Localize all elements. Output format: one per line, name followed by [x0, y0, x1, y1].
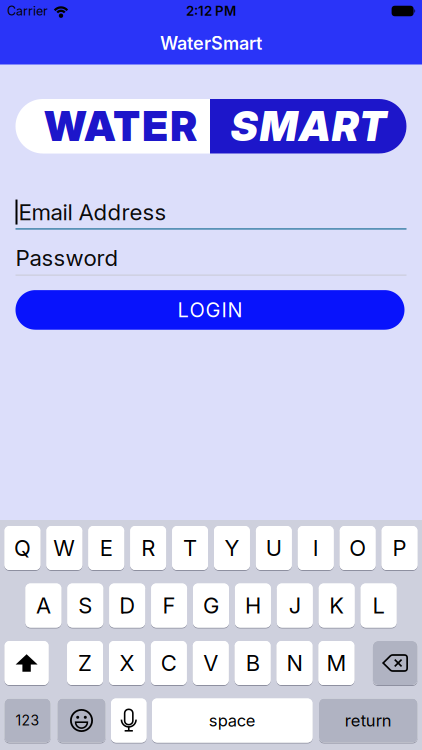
staticText: WATER: [44, 102, 197, 151]
button[interactable]: I: [298, 525, 334, 570]
staticText: S: [78, 592, 92, 619]
button[interactable]: J: [277, 583, 313, 628]
button[interactable]: D: [109, 583, 145, 628]
staticText: Q: [14, 535, 31, 561]
button[interactable]: T: [172, 525, 208, 570]
button[interactable]: 123: [4, 698, 50, 743]
staticText: return: [345, 710, 392, 730]
staticText: I: [313, 535, 319, 561]
button[interactable]: S: [67, 583, 103, 628]
button[interactable]: H: [235, 583, 271, 628]
staticText: Y: [224, 535, 239, 561]
staticText: O: [349, 535, 366, 561]
staticText: G: [203, 592, 219, 619]
button[interactable]: Email Address: [15, 198, 406, 230]
button[interactable]: E: [88, 525, 124, 570]
staticText: D: [119, 592, 135, 619]
staticText: F: [163, 592, 176, 619]
staticText: T: [183, 535, 197, 561]
button[interactable]: Z: [67, 640, 103, 685]
button[interactable]: O: [340, 525, 376, 570]
button[interactable]: L: [361, 583, 396, 628]
staticText: LOGIN: [177, 298, 242, 322]
button[interactable]: return: [319, 698, 417, 743]
button[interactable]: V: [193, 640, 229, 685]
button[interactable]: [111, 698, 146, 743]
button[interactable]: U: [256, 525, 292, 570]
staticText: Carrier: [7, 3, 48, 19]
staticText: K: [329, 592, 344, 619]
button[interactable]: M: [318, 640, 354, 685]
button[interactable]: N: [277, 640, 312, 685]
button[interactable]: Q: [4, 525, 40, 570]
staticText: B: [246, 650, 260, 676]
button[interactable]: [57, 698, 105, 743]
button[interactable]: space: [152, 698, 312, 743]
button[interactable]: W: [46, 525, 82, 570]
staticText: E: [100, 535, 113, 561]
staticText: N: [286, 650, 302, 676]
staticText: M: [326, 650, 346, 676]
button[interactable]: F: [151, 583, 187, 628]
button[interactable]: R: [130, 525, 166, 570]
staticText: Password: [15, 244, 118, 271]
staticText: P: [393, 535, 407, 561]
staticText: H: [245, 592, 261, 619]
staticText: space: [209, 710, 256, 730]
button[interactable]: G: [193, 583, 229, 628]
staticText: Z: [78, 650, 92, 676]
button[interactable]: [5, 640, 49, 685]
staticText: A: [36, 592, 51, 619]
staticText: Email Address: [18, 198, 166, 226]
staticText: R: [141, 535, 155, 561]
staticText: U: [266, 535, 282, 561]
button[interactable]: Y: [214, 525, 250, 570]
button[interactable]: P: [382, 525, 417, 570]
staticText: WaterSmart: [160, 32, 262, 54]
staticText: V: [203, 650, 218, 676]
button[interactable]: K: [319, 583, 355, 628]
staticText: J: [289, 592, 301, 619]
staticText: W: [53, 535, 75, 561]
button[interactable]: A: [25, 583, 61, 628]
staticText: X: [119, 650, 134, 676]
staticText: C: [161, 650, 177, 676]
button[interactable]: LOGIN: [15, 290, 404, 330]
button[interactable]: X: [109, 640, 145, 685]
button[interactable]: Password: [15, 244, 406, 276]
button[interactable]: C: [151, 640, 187, 685]
staticText: 123: [15, 712, 39, 729]
staticText: L: [373, 592, 385, 619]
button[interactable]: B: [235, 640, 271, 685]
staticText: SMART: [230, 102, 386, 151]
button[interactable]: [373, 640, 417, 685]
staticText: 2:12 PM: [186, 3, 236, 19]
